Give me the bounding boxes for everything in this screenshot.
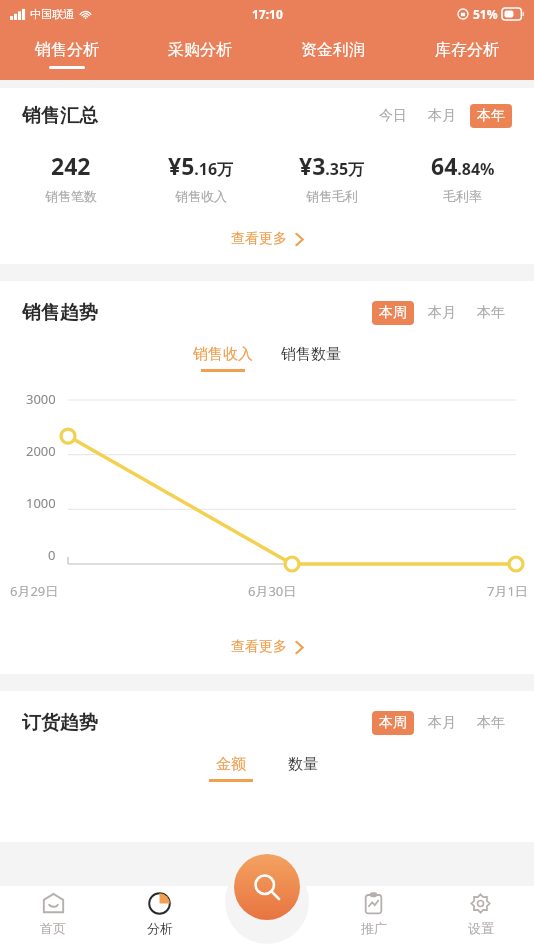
staticText: 毛利率 — [443, 188, 482, 204]
button[interactable]: 本年 — [470, 711, 512, 735]
button[interactable]: 推广 — [320, 878, 427, 950]
button[interactable]: 销售收入 — [193, 345, 253, 372]
staticText: 销售毛利 — [306, 188, 358, 204]
staticText: ¥3.35万 — [299, 150, 365, 181]
staticText: 2000 — [26, 442, 56, 460]
staticText: 0 — [48, 546, 56, 564]
staticText: 242 — [51, 150, 91, 181]
staticText: 设置 — [468, 920, 494, 936]
staticText: 7月1日 — [487, 582, 528, 600]
staticText: 中国联通 — [30, 7, 74, 21]
staticText: 本年 — [477, 107, 505, 125]
button[interactable]: 库存分析 — [400, 28, 534, 80]
button[interactable]: 本周 — [372, 711, 414, 735]
staticText: 首页 — [40, 920, 66, 936]
button[interactable]: 销售数量 — [281, 345, 341, 372]
button[interactable]: 采购分析 — [133, 28, 266, 80]
button[interactable]: 本月 — [421, 711, 463, 735]
button[interactable]: 设置 — [427, 878, 534, 950]
staticText: 金额 — [216, 755, 246, 774]
staticText: 销售数量 — [281, 345, 341, 364]
staticText: 销售收入 — [193, 345, 253, 364]
button[interactable]: 本周 — [372, 301, 414, 325]
staticText: 本年 — [477, 304, 505, 322]
staticText: 本周 — [379, 304, 407, 322]
button[interactable]: 本月 — [421, 104, 463, 128]
staticText: 本周 — [379, 714, 407, 732]
staticText: 本月 — [428, 304, 456, 322]
staticText: 本月 — [428, 107, 456, 125]
staticText: 1000 — [26, 494, 56, 512]
staticText: 本月 — [428, 714, 456, 732]
staticText: 17:10 — [252, 6, 283, 22]
staticText: 销售分析 — [35, 40, 99, 60]
button[interactable]: 本月 — [421, 301, 463, 325]
staticText: 本年 — [477, 714, 505, 732]
staticText: 查看更多 — [231, 638, 287, 656]
staticText: 6月29日 — [10, 582, 59, 600]
button[interactable]: 资金利润 — [266, 28, 400, 80]
button[interactable]: Search — [234, 854, 300, 920]
staticText: 销售收入 — [175, 188, 227, 204]
button[interactable]: 查看更多 — [0, 230, 534, 248]
button[interactable]: 数量 — [281, 755, 325, 782]
staticText: 销售笔数 — [45, 188, 97, 204]
staticText: 6月30日 — [248, 582, 297, 600]
staticText: 查看更多 — [231, 230, 287, 248]
button[interactable]: 查看更多 — [0, 638, 534, 656]
staticText: 订货趋势 — [22, 711, 98, 735]
staticText: 资金利润 — [301, 40, 365, 60]
staticText: 64.84% — [431, 150, 495, 181]
button[interactable]: 销售分析 — [0, 28, 133, 80]
staticText: ¥5.16万 — [168, 150, 234, 181]
staticText: 库存分析 — [435, 40, 499, 60]
button[interactable]: 今日 — [372, 104, 414, 128]
staticText: 数量 — [288, 755, 318, 774]
button[interactable]: 首页 — [0, 878, 106, 950]
staticText: 销售汇总 — [22, 104, 98, 128]
staticText: 51% — [473, 6, 498, 22]
button[interactable]: 本年 — [470, 301, 512, 325]
staticText: 今日 — [379, 107, 407, 125]
button[interactable]: 金额 — [209, 755, 253, 782]
staticText: 推广 — [361, 920, 387, 936]
staticText: 采购分析 — [168, 40, 232, 60]
button[interactable]: 本年 — [470, 104, 512, 128]
staticText: 销售趋势 — [22, 301, 98, 325]
staticText: 分析 — [147, 920, 173, 936]
button[interactable]: 分析 — [106, 878, 213, 950]
staticText: 3000 — [26, 390, 56, 408]
